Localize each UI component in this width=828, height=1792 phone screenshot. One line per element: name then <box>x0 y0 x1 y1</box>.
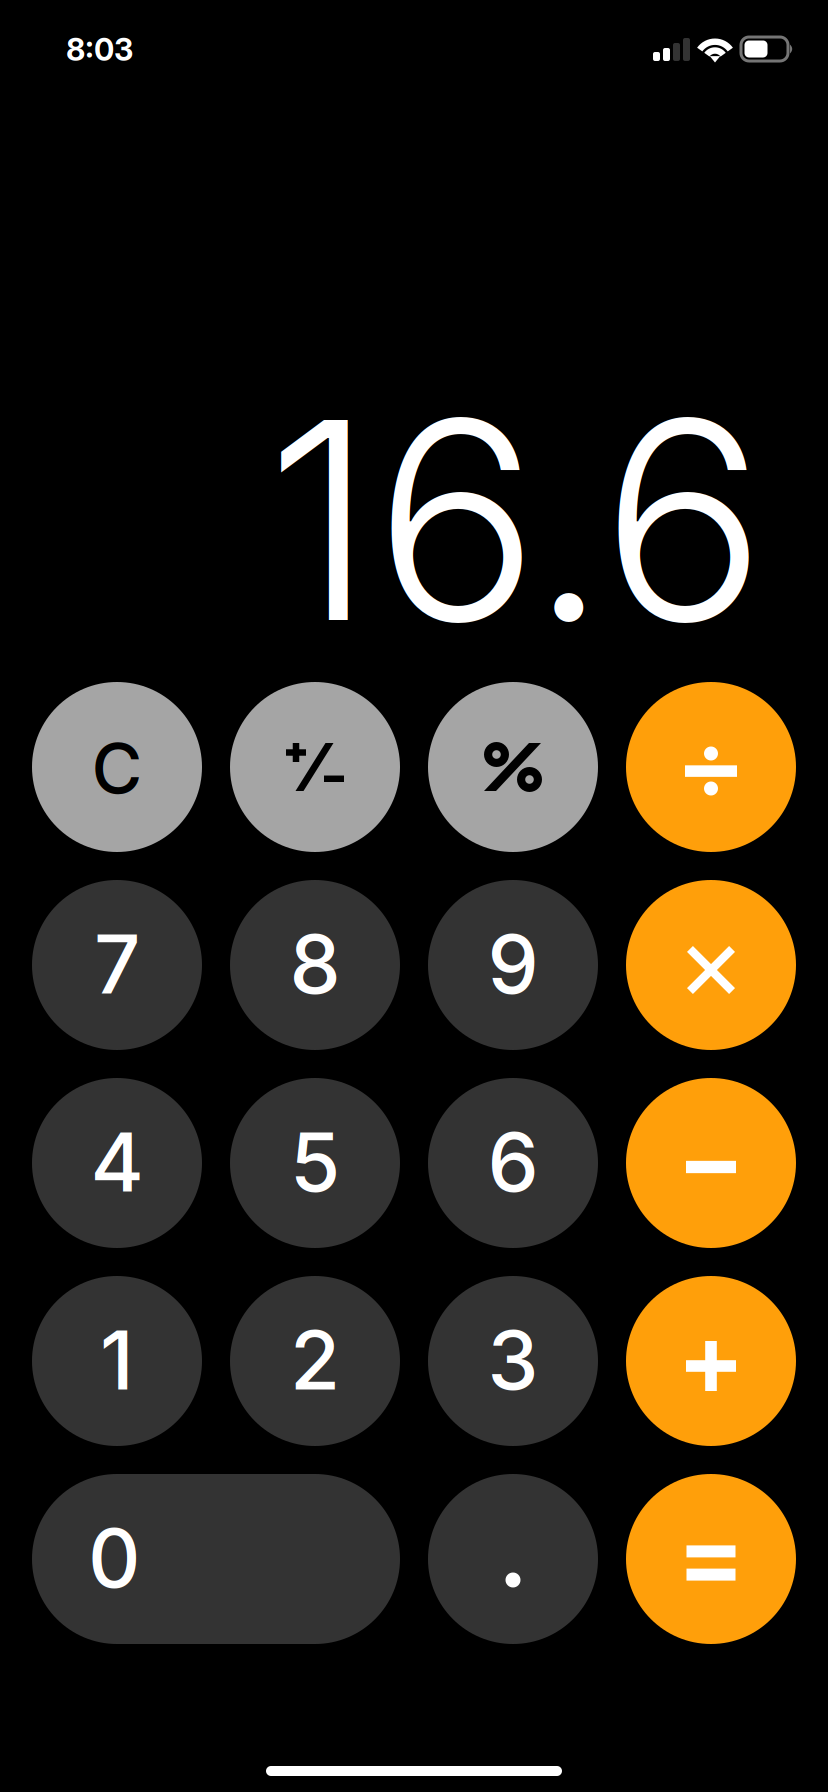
button[interactable]: 4 <box>32 1078 202 1248</box>
button[interactable]: Percent <box>428 682 598 852</box>
staticText: 0 <box>88 1509 141 1607</box>
staticText: 9 <box>487 915 538 1013</box>
button[interactable]: 6 <box>428 1078 598 1248</box>
button[interactable]: Decimal point <box>428 1474 598 1644</box>
staticText: C <box>91 726 142 810</box>
button[interactable]: 7 <box>32 880 202 1050</box>
button[interactable]: 5 <box>230 1078 400 1248</box>
staticText: 8:03 <box>66 31 133 68</box>
staticText: 6 <box>487 1113 538 1211</box>
staticText: 3 <box>487 1311 538 1409</box>
button[interactable]: Equals <box>626 1474 796 1644</box>
button[interactable]: Multiply <box>626 880 796 1050</box>
button[interactable]: Divide <box>626 682 796 852</box>
button[interactable]: Toggle sign <box>230 682 400 852</box>
staticText: 5 <box>290 1113 340 1211</box>
staticText: 2 <box>290 1311 340 1409</box>
button[interactable]: Add <box>626 1276 796 1446</box>
staticText: 4 <box>90 1113 143 1211</box>
button[interactable]: Subtract <box>626 1078 796 1248</box>
button[interactable]: 2 <box>230 1276 400 1446</box>
staticText: 16.6 <box>266 354 766 686</box>
staticText: 8 <box>289 915 340 1013</box>
button[interactable]: 3 <box>428 1276 598 1446</box>
staticText: 7 <box>94 915 140 1013</box>
button[interactable]: 0 <box>32 1474 400 1644</box>
button[interactable]: 8 <box>230 880 400 1050</box>
button[interactable]: 9 <box>428 880 598 1050</box>
button[interactable]: Clear <box>32 682 202 852</box>
staticText: 1 <box>100 1311 134 1409</box>
button[interactable]: 1 <box>32 1276 202 1446</box>
